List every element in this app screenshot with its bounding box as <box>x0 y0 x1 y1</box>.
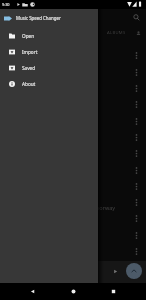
button[interactable]: More options <box>130 194 143 210</box>
button[interactable]: More options <box>130 162 143 178</box>
button[interactable]: More options <box>130 96 143 112</box>
staticText: Saved <box>22 65 36 71</box>
button[interactable]: Music Speed Changer <box>0 10 98 26</box>
staticText: 9:30 <box>2 2 10 7</box>
staticText: About <box>22 81 36 87</box>
staticText: Open <box>22 33 35 39</box>
button[interactable]: Recent apps <box>105 283 122 300</box>
button[interactable]: More options <box>130 145 143 161</box>
button[interactable]: Import <box>0 44 98 60</box>
staticText: Import <box>22 49 38 55</box>
button[interactable]: Expand player <box>126 263 142 279</box>
button[interactable]: Home <box>65 283 82 300</box>
button[interactable]: More options <box>130 113 143 129</box>
button[interactable]: More options <box>130 227 143 243</box>
button[interactable]: Saved <box>0 60 98 76</box>
button[interactable]: Account <box>133 28 143 38</box>
button[interactable]: Search <box>131 12 142 23</box>
button[interactable]: More options <box>130 64 143 80</box>
button[interactable]: Back <box>24 283 41 300</box>
button[interactable]: More options <box>130 210 143 226</box>
button[interactable]: More options <box>130 47 143 63</box>
button[interactable]: More options <box>130 178 143 194</box>
button[interactable]: Open <box>0 28 98 44</box>
staticText: Doorway <box>92 204 116 211</box>
button[interactable]: Play <box>109 265 121 277</box>
button[interactable]: More options <box>130 80 143 96</box>
button[interactable]: More options <box>130 243 143 259</box>
button[interactable]: About <box>0 76 98 92</box>
staticText: Music Speed Changer <box>16 15 61 21</box>
staticText: ALBUMS <box>107 30 126 36</box>
button[interactable]: More options <box>130 129 143 145</box>
